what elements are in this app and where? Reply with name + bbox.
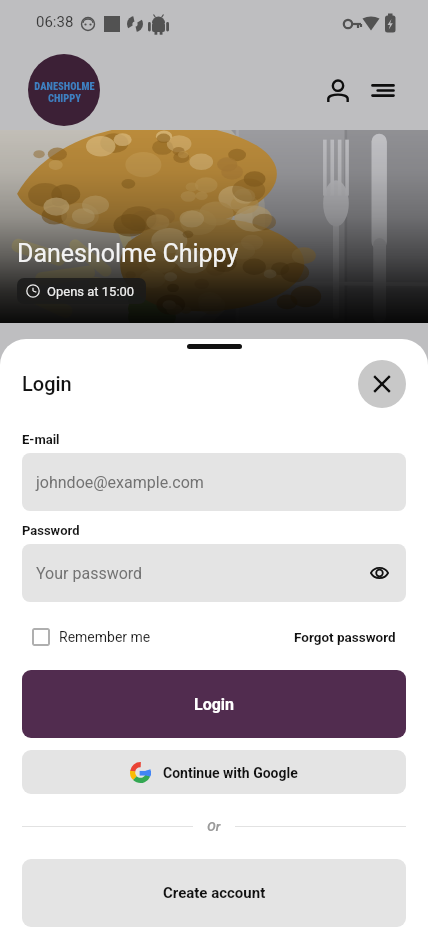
button[interactable]: Your password [22,544,406,602]
staticText: Password [22,523,80,538]
button[interactable]: DANESHOLME CHIPPY [28,54,100,126]
staticText: Or [207,819,221,834]
staticText: E-mail [22,432,60,447]
staticText: 06:38 [36,13,74,31]
button[interactable]: Show password [362,556,396,590]
staticText: Login [194,695,235,714]
staticText: Danesholme Chippy [17,239,239,268]
button[interactable]: Menu [360,68,405,113]
staticText: Your password [36,564,143,583]
staticText: DANESHOLME CHIPPY [34,80,95,104]
staticText: Continue with Google [163,765,298,781]
staticText: Forgot password [294,629,396,645]
button[interactable]: johndoe@example.com [22,453,406,511]
staticText: Remember me [59,629,151,645]
button[interactable]: Account [315,68,360,113]
button[interactable]: Remember me [32,628,151,646]
button[interactable]: Create account [22,859,406,927]
button[interactable]: Forgot password [294,629,396,645]
button[interactable]: Continue with Google [22,750,406,794]
staticText: Create account [163,884,266,902]
button[interactable]: Login [22,670,406,738]
button[interactable]: Close [358,360,406,408]
staticText: Login [22,372,72,395]
staticText: Opens at 15:00 [47,284,135,299]
staticText: johndoe@example.com [36,473,204,492]
